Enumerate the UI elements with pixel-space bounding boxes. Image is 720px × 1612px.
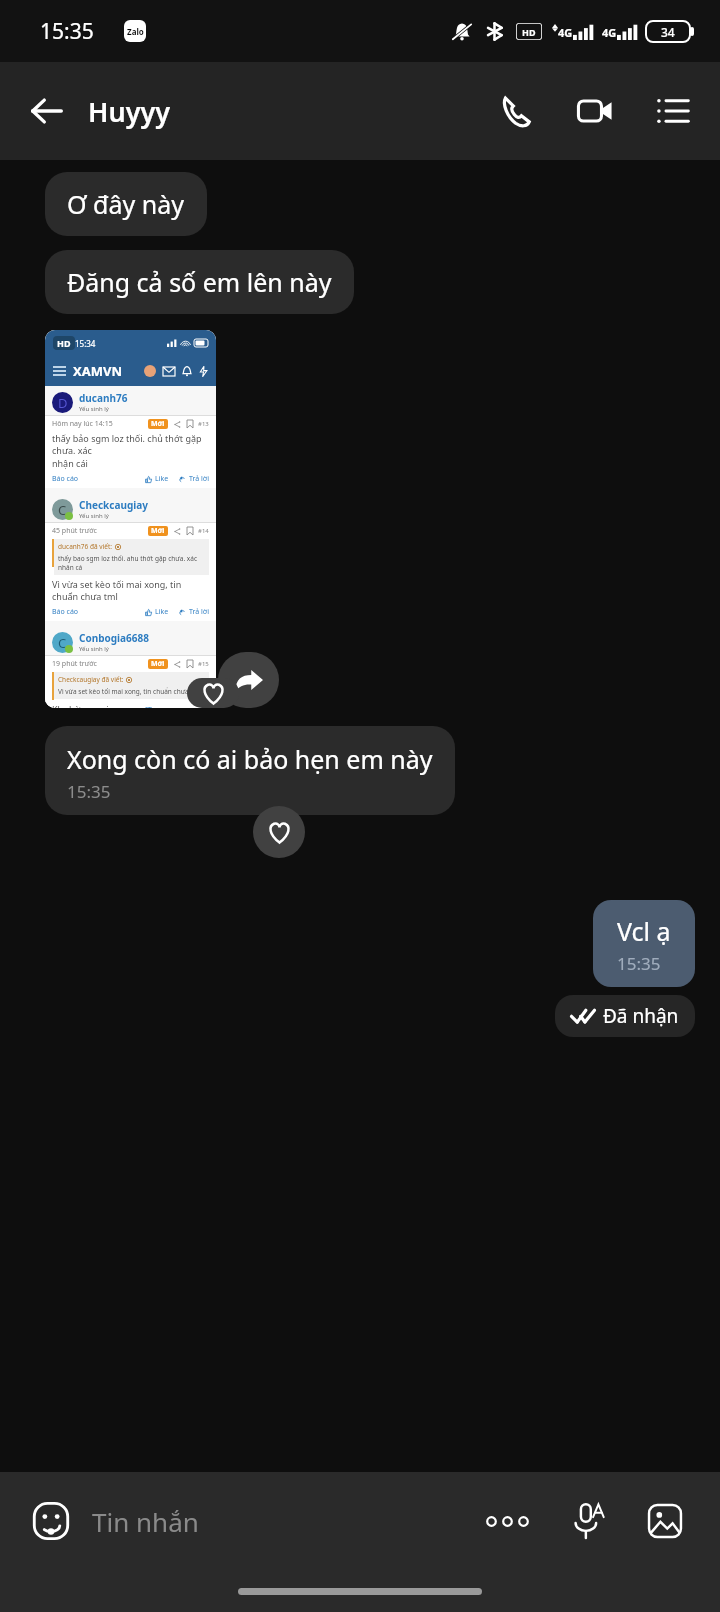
staticText: 45 phút trước [52, 526, 97, 536]
button[interactable]: More options [642, 80, 704, 142]
staticText: Xong còn có ai bảo hẹn em này [67, 742, 433, 776]
staticText: Mới [151, 659, 165, 669]
staticText: Vì vừa set kèo tối mai xong, tin chuẩn c… [58, 687, 201, 696]
staticText: #13 [198, 420, 209, 428]
staticText: 15:35 [40, 17, 94, 46]
button[interactable]: Đã nhận [555, 995, 695, 1037]
button[interactable]: Tin nhắn [92, 1504, 476, 1539]
staticText: Báo cáo [52, 607, 79, 617]
staticText: Yếu sinh lý [79, 645, 109, 653]
staticText: C [58, 634, 67, 652]
staticText: thấy bao sgm loz thối. ahu thớt gặp chưa… [58, 554, 205, 572]
staticText: Conbogia6688 [79, 631, 149, 645]
staticText: HD [57, 337, 71, 349]
staticText: Báo cáo [52, 474, 79, 484]
staticText: Yếu sinh lý [79, 512, 109, 520]
staticText: thấy bảo sgm loz thối. chủ thớt gặp chưa… [52, 432, 209, 470]
button[interactable]: Emoji [22, 1492, 80, 1550]
staticText: Mới [151, 419, 165, 429]
staticText: Vì vừa set kèo tối mai xong, tin chuẩn c… [52, 578, 209, 603]
staticText: 19 phút trước [52, 659, 97, 669]
staticText: D [58, 394, 68, 412]
button[interactable]: Like [253, 806, 305, 858]
staticText: Trả lời [189, 607, 209, 617]
staticText: Mới [151, 526, 165, 536]
button[interactable]: Forward [218, 652, 279, 708]
button[interactable]: Call [486, 80, 548, 142]
staticText: Checkcaugiay đã viết: [58, 675, 124, 684]
staticText: Trả lời [189, 474, 209, 484]
button[interactable]: Huyyy [88, 93, 171, 130]
staticText: ducanh76 đã viết: [58, 542, 113, 551]
button[interactable]: Voice message [556, 1490, 618, 1552]
button[interactable]: Like [187, 678, 239, 708]
staticText: ducanh76 [79, 391, 128, 405]
button[interactable]: Send image [634, 1490, 696, 1552]
staticText: 15:34 [75, 338, 96, 349]
button[interactable]: Video call [564, 80, 626, 142]
staticText: Checkcaugiay [79, 498, 148, 512]
staticText: 34 [661, 24, 675, 40]
staticText: Kk chờ m review [52, 703, 121, 708]
button[interactable]: Vcl ạ [593, 900, 695, 987]
button[interactable]: Đăng cả số em lên này [45, 250, 354, 314]
staticText: Vcl ạ [617, 914, 671, 948]
staticText: Yếu sinh lý [79, 405, 109, 413]
staticText: Ơ đây này [67, 187, 185, 221]
staticText: 15:35 [67, 780, 111, 803]
staticText: 15:35 [617, 952, 661, 975]
staticText: Zalo [127, 26, 144, 37]
button[interactable]: More [476, 1490, 538, 1552]
staticText: Đăng cả số em lên này [67, 265, 332, 299]
button[interactable]: Shared screenshot [45, 330, 216, 708]
staticText: XAMVN [73, 362, 122, 380]
staticText: 4G [602, 25, 617, 40]
staticText: Hôm nay lúc 14:15 [52, 419, 113, 429]
button[interactable]: Ơ đây này [45, 172, 207, 236]
staticText: Like [155, 607, 169, 617]
button[interactable]: Back [18, 82, 76, 140]
staticText: Like [155, 474, 169, 484]
button[interactable]: Xong còn có ai bảo hẹn em này [45, 726, 455, 815]
staticText: HD [522, 26, 536, 38]
staticText: 4G [558, 25, 573, 40]
staticText: #15 [198, 660, 209, 668]
staticText: #14 [198, 527, 209, 535]
staticText: Đã nhận [603, 1003, 679, 1029]
staticText: C [58, 501, 67, 519]
